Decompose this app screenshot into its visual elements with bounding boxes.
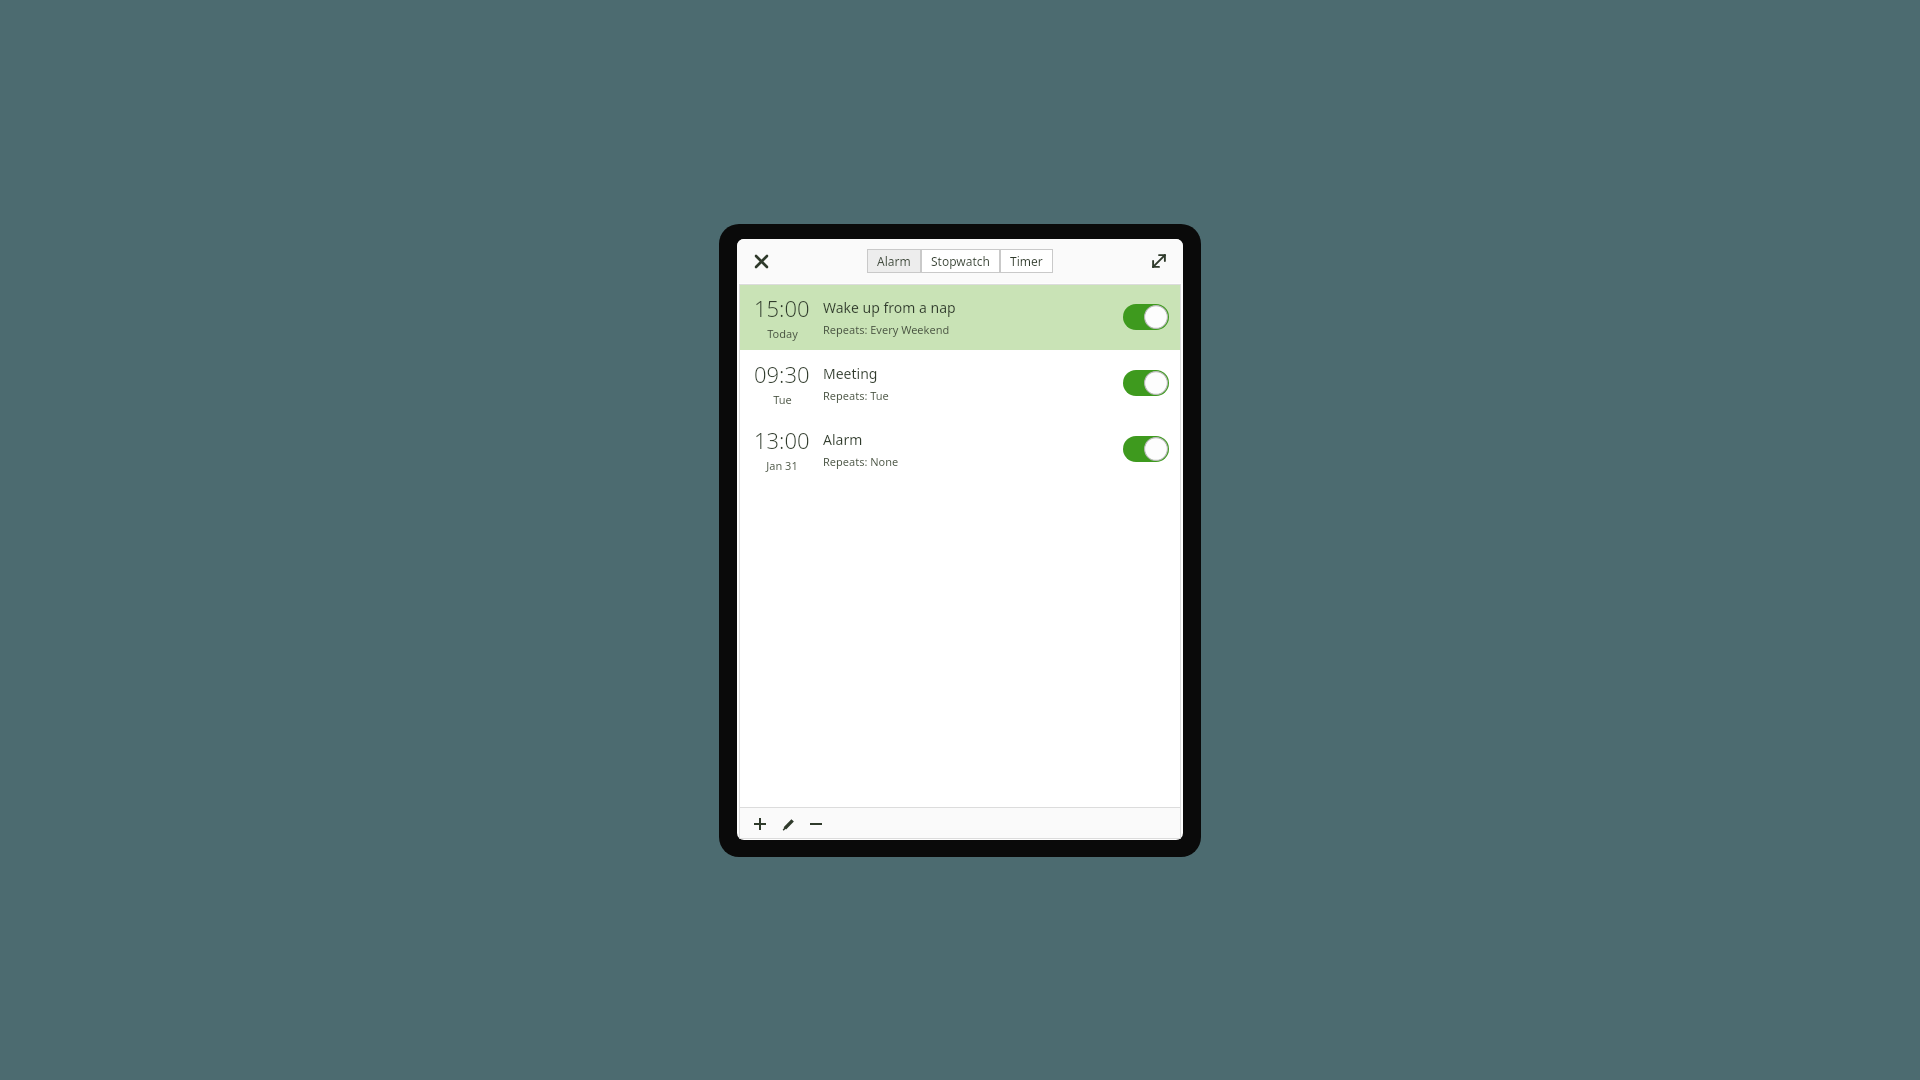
staticText: 13:00: [754, 425, 810, 455]
button[interactable]: Edit alarm: [775, 811, 801, 837]
staticText: Alarm: [877, 253, 911, 269]
staticText: 15:00: [754, 293, 810, 323]
staticText: Repeats: Tue: [823, 388, 889, 403]
staticText: 09:30: [754, 359, 810, 389]
button[interactable]: 09:30: [739, 350, 1181, 416]
staticText: Meeting: [823, 364, 878, 383]
button[interactable]: Timer: [1000, 249, 1053, 273]
staticText: Repeats: None: [823, 454, 899, 469]
staticText: Repeats: Every Weekend: [823, 322, 950, 337]
button[interactable]: 13:00: [739, 416, 1181, 482]
button[interactable]: Alarm enabled toggle: [1123, 370, 1169, 396]
staticText: Wake up from a nap: [823, 298, 956, 317]
button[interactable]: Close: [745, 245, 777, 277]
button[interactable]: Alarm enabled toggle: [1123, 304, 1169, 330]
button[interactable]: 15:00: [739, 284, 1181, 350]
staticText: Tue: [773, 392, 792, 407]
staticText: Timer: [1010, 253, 1043, 269]
button[interactable]: Expand: [1143, 245, 1175, 277]
staticText: Alarm: [823, 430, 863, 449]
button[interactable]: Alarm enabled toggle: [1123, 436, 1169, 462]
button[interactable]: Add alarm: [747, 811, 773, 837]
button[interactable]: Stopwatch: [921, 249, 1000, 273]
staticText: Stopwatch: [931, 253, 990, 269]
staticText: Jan 31: [766, 458, 798, 473]
button[interactable]: Alarm: [867, 249, 921, 273]
button[interactable]: Delete alarm: [803, 811, 829, 837]
staticText: Today: [767, 326, 798, 341]
